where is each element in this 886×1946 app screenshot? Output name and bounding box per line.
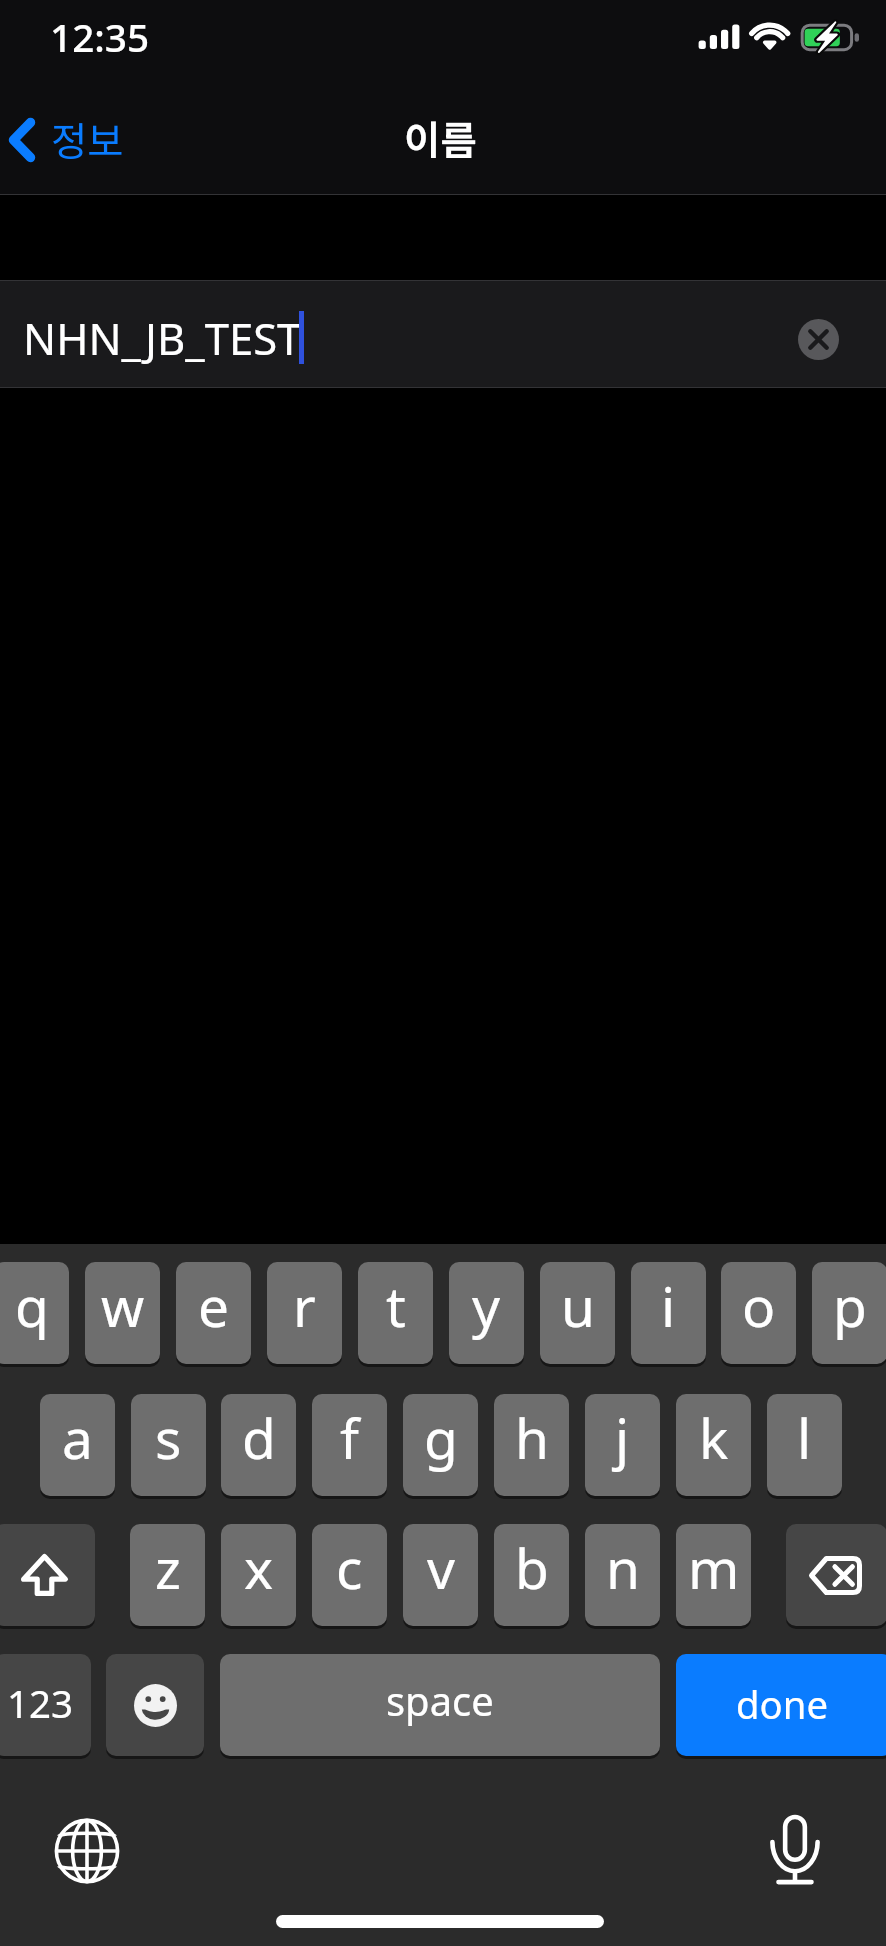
button[interactable]: y (449, 1262, 524, 1364)
button[interactable]: r (267, 1262, 342, 1364)
button[interactable]: q (0, 1262, 69, 1364)
button[interactable]: Backspace (786, 1524, 886, 1626)
button[interactable]: n (585, 1524, 660, 1626)
staticText: q (15, 1268, 49, 1343)
button[interactable]: i (631, 1262, 706, 1364)
staticText: 정보 (51, 110, 124, 167)
staticText: g (424, 1400, 458, 1475)
staticText: v (427, 1530, 455, 1605)
button[interactable]: space (220, 1654, 660, 1756)
staticText: o (742, 1268, 776, 1343)
button[interactable]: b (494, 1524, 569, 1626)
staticText: p (833, 1268, 867, 1343)
button[interactable]: d (221, 1394, 296, 1496)
button[interactable]: c (312, 1524, 387, 1626)
button[interactable]: h (494, 1394, 569, 1496)
button[interactable]: z (130, 1524, 205, 1626)
button[interactable]: w (85, 1262, 160, 1364)
staticText: s (155, 1400, 182, 1475)
button[interactable]: m (676, 1524, 751, 1626)
button[interactable]: l (767, 1394, 842, 1496)
button[interactable]: Shift (0, 1524, 95, 1626)
staticText: c (336, 1530, 363, 1605)
button[interactable]: Emoji (106, 1654, 204, 1756)
staticText: n (606, 1530, 640, 1605)
staticText: i (661, 1268, 676, 1343)
staticText: m (688, 1530, 740, 1605)
button[interactable]: t (358, 1262, 433, 1364)
button[interactable]: done (676, 1654, 886, 1756)
staticText: 이름 (404, 109, 477, 166)
button[interactable]: a (40, 1394, 115, 1496)
staticText: u (561, 1268, 595, 1343)
staticText: t (386, 1268, 406, 1343)
button[interactable]: Change keyboard (54, 1818, 120, 1884)
button[interactable]: g (403, 1394, 478, 1496)
staticText: x (244, 1530, 274, 1605)
button[interactable]: Clear text (798, 319, 839, 360)
button[interactable]: v (403, 1524, 478, 1626)
staticText: e (198, 1268, 230, 1343)
button[interactable]: s (131, 1394, 206, 1496)
staticText: w (101, 1268, 145, 1343)
button[interactable]: x (221, 1524, 296, 1626)
button[interactable]: Dictation (767, 1815, 823, 1887)
staticText: a (62, 1400, 93, 1475)
staticText: d (242, 1400, 276, 1475)
button[interactable]: p (812, 1262, 886, 1364)
staticText: b (515, 1530, 549, 1605)
staticText: l (797, 1400, 812, 1475)
button[interactable]: 123 (0, 1654, 91, 1756)
staticText: z (155, 1530, 181, 1605)
staticText: j (615, 1400, 630, 1475)
staticText: f (340, 1400, 359, 1475)
staticText: r (293, 1268, 316, 1343)
staticText: y (472, 1268, 501, 1343)
button[interactable]: f (312, 1394, 387, 1496)
button[interactable]: o (721, 1262, 796, 1364)
staticText: 12:35 (50, 11, 150, 64)
button[interactable]: u (540, 1262, 615, 1364)
button[interactable]: 정보 (0, 102, 140, 175)
button[interactable]: k (676, 1394, 751, 1496)
staticText: done (736, 1678, 828, 1730)
staticText: space (386, 1673, 494, 1727)
button[interactable]: j (585, 1394, 660, 1496)
staticText: k (699, 1400, 729, 1475)
staticText: h (515, 1400, 549, 1475)
button[interactable]: e (176, 1262, 251, 1364)
staticText: NHN_JB_TEST (23, 308, 302, 367)
staticText: 123 (7, 1677, 74, 1729)
